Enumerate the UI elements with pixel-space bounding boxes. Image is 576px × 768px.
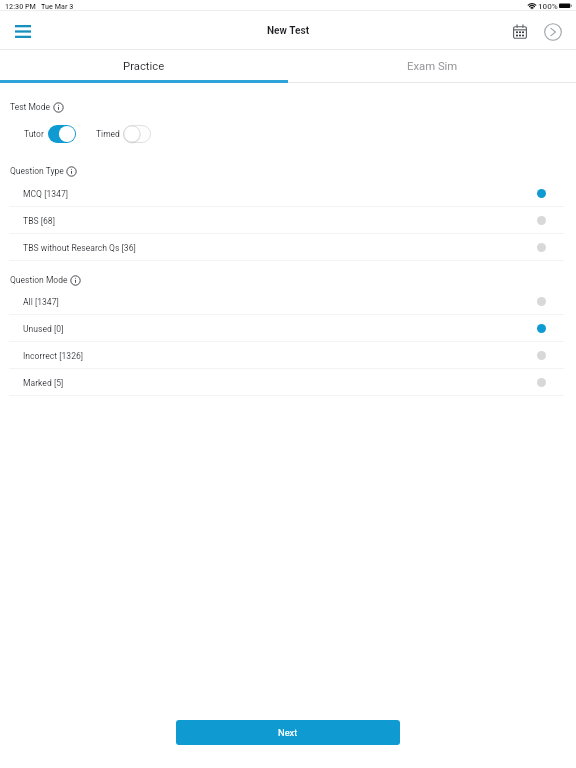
staticText: Question Mode bbox=[10, 275, 68, 285]
staticText: 12:30 PM bbox=[5, 2, 36, 10]
button[interactable]: Timed bbox=[93, 125, 154, 143]
staticText: All [1347] bbox=[23, 297, 59, 307]
staticText: TBS without Research Qs [36] bbox=[23, 243, 136, 253]
staticText: Question Type bbox=[10, 166, 64, 176]
button[interactable]: Open navigation menu bbox=[9, 17, 37, 45]
staticText: MCQ [1347] bbox=[23, 189, 69, 199]
staticText: Tue Mar 3 bbox=[41, 2, 74, 10]
button[interactable]: Calendar bbox=[506, 18, 533, 45]
button[interactable]: Exam Sim bbox=[288, 50, 576, 82]
staticText: Timed bbox=[96, 129, 120, 139]
button[interactable]: Unused [0] bbox=[0, 315, 576, 342]
button[interactable]: Next bbox=[176, 720, 400, 745]
staticText: Marked [5] bbox=[23, 378, 64, 388]
staticText: Unused [0] bbox=[23, 324, 64, 334]
staticText: New Test bbox=[267, 25, 310, 37]
staticText: Tutor bbox=[24, 129, 44, 139]
button[interactable]: All [1347] bbox=[0, 288, 576, 315]
button[interactable]: Practice bbox=[0, 50, 288, 82]
staticText: Practice bbox=[123, 60, 165, 73]
staticText: Exam Sim bbox=[407, 60, 458, 73]
button[interactable]: TBS [68] bbox=[0, 207, 576, 234]
button[interactable]: Next bbox=[539, 18, 566, 45]
staticText: Test Mode bbox=[10, 102, 51, 112]
staticText: TBS [68] bbox=[23, 216, 55, 226]
staticText: Incorrect [1326] bbox=[23, 351, 84, 361]
button[interactable]: Marked [5] bbox=[0, 369, 576, 396]
staticText: 100% bbox=[538, 1, 558, 10]
button[interactable]: TBS without Research Qs [36] bbox=[0, 234, 576, 261]
button[interactable]: Incorrect [1326] bbox=[0, 342, 576, 369]
button[interactable]: Tutor bbox=[21, 125, 79, 143]
button[interactable]: MCQ [1347] bbox=[0, 180, 576, 207]
staticText: Next bbox=[278, 727, 298, 738]
